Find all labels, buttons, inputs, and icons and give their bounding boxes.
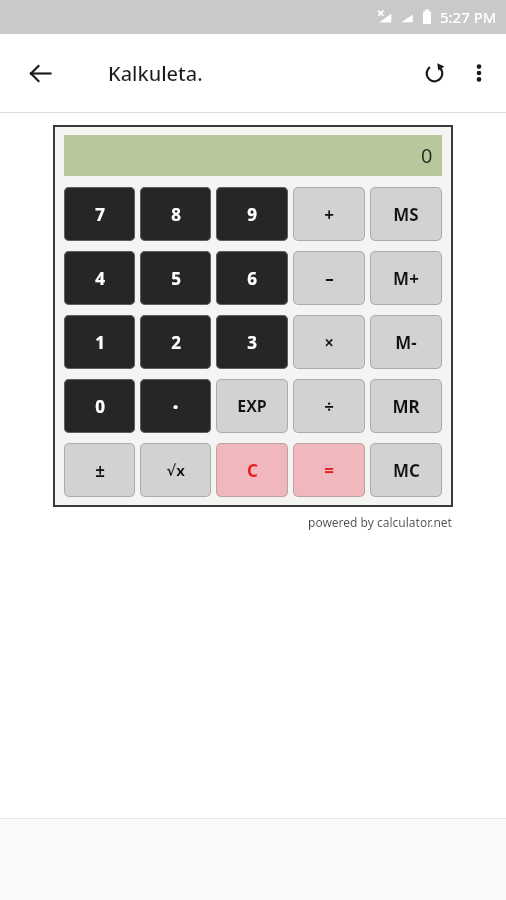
staticText: 9: [247, 203, 257, 226]
button[interactable]: 8: [140, 187, 211, 241]
staticText: ·: [172, 391, 179, 421]
staticText: MR: [392, 395, 420, 418]
staticText: C: [247, 459, 258, 482]
button[interactable]: 9: [216, 187, 288, 241]
button[interactable]: EXP: [216, 379, 288, 433]
staticText: √x: [166, 460, 185, 480]
staticText: 0: [95, 395, 105, 418]
staticText: powered by calculator.net: [308, 514, 452, 530]
button[interactable]: +: [293, 187, 365, 241]
staticText: ±: [95, 459, 105, 482]
staticText: 5:27 PM: [440, 7, 497, 27]
button[interactable]: 4: [64, 251, 135, 305]
staticText: M+: [393, 267, 419, 290]
staticText: +: [324, 203, 334, 226]
button[interactable]: MS: [370, 187, 442, 241]
button[interactable]: 6: [216, 251, 288, 305]
button[interactable]: Back: [16, 49, 64, 97]
button[interactable]: ±: [64, 443, 135, 497]
button[interactable]: –: [293, 251, 365, 305]
button[interactable]: ÷: [293, 379, 365, 433]
button[interactable]: =: [293, 443, 365, 497]
staticText: 8: [171, 203, 181, 226]
staticText: ÷: [324, 395, 334, 418]
staticText: 4: [95, 267, 105, 290]
staticText: 3: [247, 331, 257, 354]
button[interactable]: ×: [293, 315, 365, 369]
staticText: 5: [171, 267, 181, 290]
button[interactable]: 3: [216, 315, 288, 369]
button[interactable]: M-: [370, 315, 442, 369]
button[interactable]: MC: [370, 443, 442, 497]
button[interactable]: 5: [140, 251, 211, 305]
button[interactable]: C: [216, 443, 288, 497]
button[interactable]: 7: [64, 187, 135, 241]
staticText: 2: [171, 331, 181, 354]
staticText: Kalkuleta.: [108, 60, 203, 87]
staticText: 0: [421, 142, 433, 169]
button[interactable]: 1: [64, 315, 135, 369]
button[interactable]: ·: [140, 379, 211, 433]
staticText: 6: [247, 267, 257, 290]
button[interactable]: MR: [370, 379, 442, 433]
staticText: –: [325, 267, 334, 290]
staticText: 1: [95, 331, 105, 354]
staticText: MS: [393, 203, 419, 226]
button[interactable]: Refresh: [410, 49, 458, 97]
button[interactable]: 0: [64, 379, 135, 433]
button[interactable]: 2: [140, 315, 211, 369]
staticText: 7: [95, 203, 105, 226]
staticText: =: [324, 459, 334, 482]
staticText: MC: [393, 459, 420, 482]
staticText: ×: [324, 331, 334, 354]
staticText: M-: [395, 331, 417, 354]
staticText: EXP: [237, 395, 267, 417]
button[interactable]: More options: [458, 49, 500, 97]
button[interactable]: √x: [140, 443, 211, 497]
button[interactable]: M+: [370, 251, 442, 305]
